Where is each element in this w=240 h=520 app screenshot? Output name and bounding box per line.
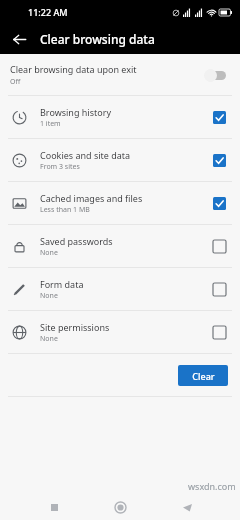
staticText: Saved passwords — [40, 235, 113, 247]
button[interactable]: Clear browsing data upon exit — [0, 55, 240, 95]
button[interactable]: Back — [6, 26, 32, 52]
staticText: Form data — [40, 278, 84, 290]
button[interactable]: Unchecked — [210, 237, 228, 255]
button[interactable]: Unchecked — [210, 280, 228, 298]
button[interactable]: Checked — [210, 151, 228, 169]
staticText: wsxdn.com — [188, 480, 236, 492]
button[interactable]: Cached images and files — [0, 182, 240, 224]
staticText: None — [40, 291, 58, 301]
button[interactable]: Back — [174, 494, 200, 520]
staticText: Clear — [192, 370, 215, 382]
button[interactable]: Saved passwords — [0, 225, 240, 267]
staticText: Cached images and files — [40, 192, 143, 204]
staticText: None — [40, 334, 58, 344]
staticText: Site permissions — [40, 321, 110, 333]
staticText: Browsing history — [40, 106, 111, 118]
button[interactable]: Checked — [210, 194, 228, 212]
button[interactable]: Home — [107, 494, 133, 520]
staticText: From 3 sites — [40, 162, 80, 172]
button[interactable]: Recents — [41, 494, 67, 520]
button[interactable]: Cookies and site data — [0, 139, 240, 181]
button[interactable]: Site permissions — [0, 311, 240, 353]
staticText: Clear browsing data upon exit — [10, 63, 137, 75]
staticText: Less than 1 MB — [40, 205, 90, 215]
staticText: 11:22 AM — [28, 6, 68, 18]
button[interactable]: Browsing history — [0, 96, 240, 138]
button[interactable]: Form data — [0, 268, 240, 310]
staticText: Cookies and site data — [40, 149, 131, 161]
staticText: 1 item — [40, 119, 61, 129]
button[interactable]: Checked — [210, 108, 228, 126]
button[interactable]: Unchecked — [210, 323, 228, 341]
staticText: Clear browsing data — [40, 31, 155, 47]
staticText: None — [40, 248, 58, 258]
button[interactable]: Clear — [178, 365, 228, 386]
staticText: Off — [10, 77, 21, 87]
